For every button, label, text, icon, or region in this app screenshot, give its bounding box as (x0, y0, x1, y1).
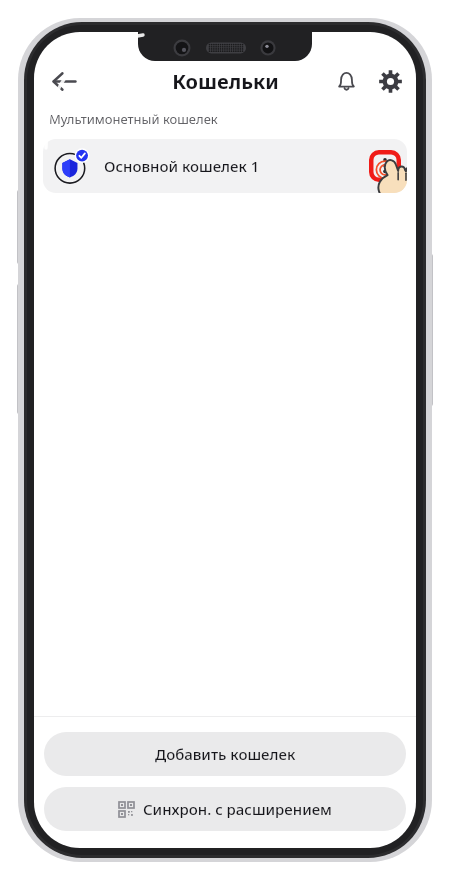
button[interactable]: More options (369, 150, 401, 182)
button[interactable]: Добавить кошелек (44, 732, 406, 776)
staticText: Кошельки (172, 68, 279, 95)
staticText: Мультимонетный кошелек (49, 110, 218, 128)
button[interactable]: Синхрон. с расширением (44, 787, 406, 831)
staticText: Основной кошелек 1 (104, 156, 260, 176)
button[interactable]: Settings (370, 61, 410, 101)
button[interactable]: Notifications (326, 61, 366, 101)
button[interactable]: Back (42, 59, 86, 103)
button[interactable]: Основной кошелек 1 (43, 139, 407, 193)
staticText: Добавить кошелек (155, 744, 296, 764)
staticText: Синхрон. с расширением (143, 799, 332, 819)
